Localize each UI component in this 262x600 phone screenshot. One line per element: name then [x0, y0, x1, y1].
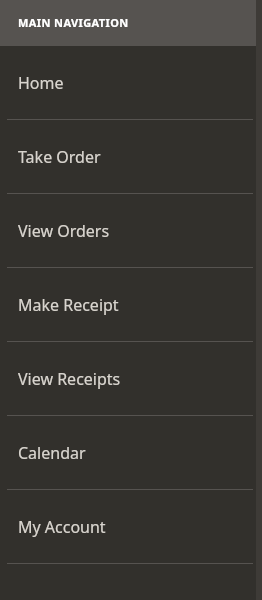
staticText: View Orders	[18, 220, 110, 242]
button[interactable]: View Orders	[0, 194, 256, 267]
button[interactable]: View Receipts	[0, 342, 256, 415]
button[interactable]: Take Order	[0, 120, 256, 193]
button[interactable]: Home	[0, 46, 256, 119]
staticText: Take Order	[18, 146, 101, 168]
staticText: Home	[18, 72, 64, 94]
button[interactable]: My Account	[0, 490, 256, 563]
button[interactable]: Make Receipt	[0, 268, 256, 341]
staticText: Calendar	[18, 442, 86, 464]
staticText: MAIN NAVIGATION	[18, 15, 129, 30]
staticText: View Receipts	[18, 368, 121, 390]
staticText: My Account	[18, 516, 106, 538]
staticText: Make Receipt	[18, 294, 119, 316]
button[interactable]: Calendar	[0, 416, 256, 489]
